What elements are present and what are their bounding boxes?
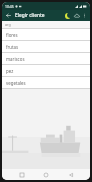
staticText: frutas [6, 44, 19, 50]
button[interactable]: Back [66, 170, 76, 180]
button[interactable]: More options [81, 12, 88, 19]
button[interactable]: Night mode [63, 11, 72, 20]
staticText: arg [5, 22, 11, 27]
button[interactable]: Recents [17, 170, 27, 180]
staticText: pez [6, 68, 14, 74]
button[interactable]: vegetales [2, 77, 90, 88]
staticText: flores [6, 32, 18, 38]
staticText: mariscos [6, 56, 25, 62]
button[interactable]: Home [41, 170, 51, 180]
button[interactable]: pez [2, 65, 90, 76]
staticText: vegetales [6, 80, 26, 86]
button[interactable]: flores [2, 29, 90, 40]
button[interactable]: mariscos [2, 53, 90, 64]
staticText: Elegir cliente [15, 12, 63, 19]
staticText: 10:45 [5, 4, 14, 9]
button[interactable]: Sync [72, 11, 81, 20]
button[interactable]: Back [4, 11, 13, 20]
button[interactable]: frutas [2, 41, 90, 52]
